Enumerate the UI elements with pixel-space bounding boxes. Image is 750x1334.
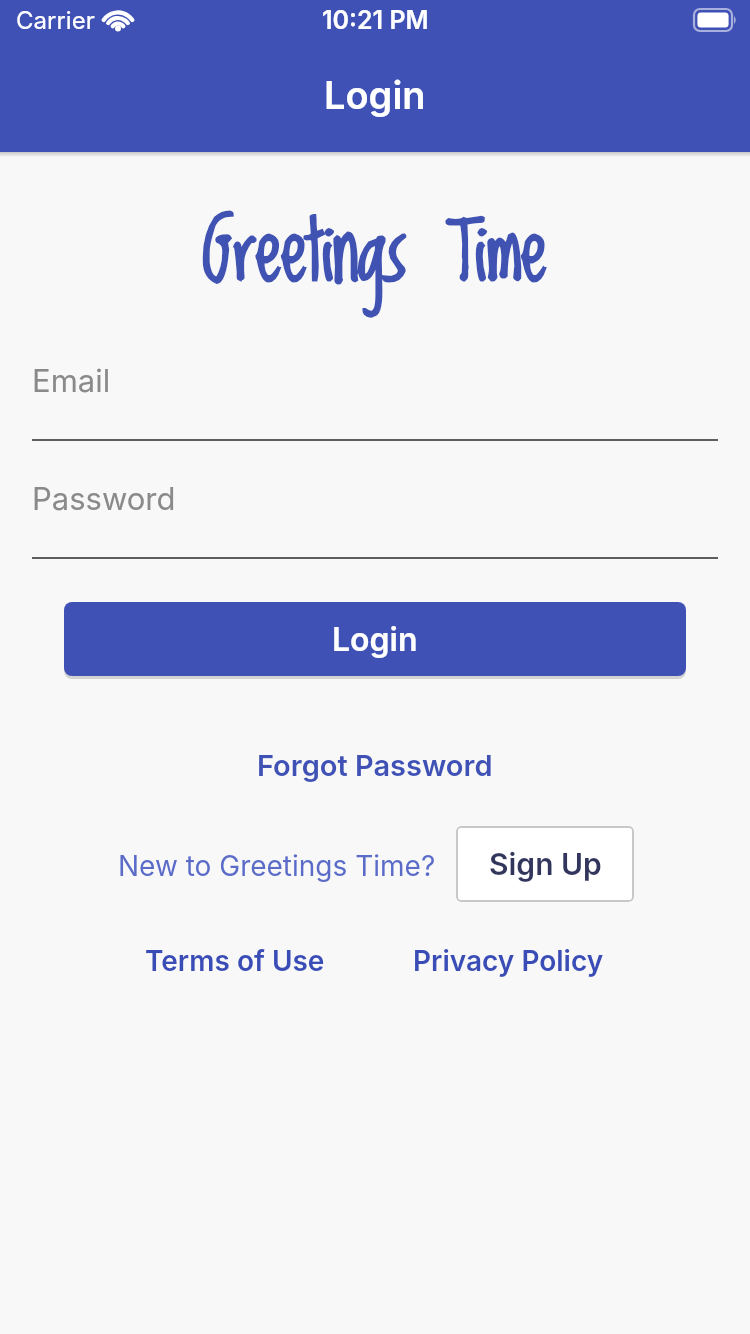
staticText: 10:21 PM bbox=[322, 5, 429, 35]
staticText: Password bbox=[32, 480, 176, 518]
button[interactable]: Email bbox=[32, 362, 750, 400]
button[interactable]: Password bbox=[32, 480, 750, 518]
button[interactable]: Login bbox=[64, 602, 686, 676]
button[interactable]: Terms of Use bbox=[145, 944, 325, 978]
button[interactable]: Sign Up bbox=[456, 826, 634, 902]
staticText: New to Greetings Time? bbox=[118, 849, 436, 883]
staticText: Login bbox=[324, 72, 426, 118]
staticText: Sign Up bbox=[489, 846, 602, 882]
staticText: Forgot Password bbox=[257, 748, 493, 783]
staticText: Terms of Use bbox=[145, 944, 325, 978]
staticText: Email bbox=[32, 362, 111, 400]
staticText: Privacy Policy bbox=[413, 944, 604, 978]
staticText: Greetings Time bbox=[0, 186, 750, 324]
staticText: Carrier bbox=[16, 6, 95, 35]
button[interactable]: Forgot Password bbox=[257, 748, 493, 783]
staticText: Login bbox=[332, 620, 418, 659]
button[interactable]: Privacy Policy bbox=[413, 944, 604, 978]
staticText: Greetings Time bbox=[0, 186, 750, 324]
